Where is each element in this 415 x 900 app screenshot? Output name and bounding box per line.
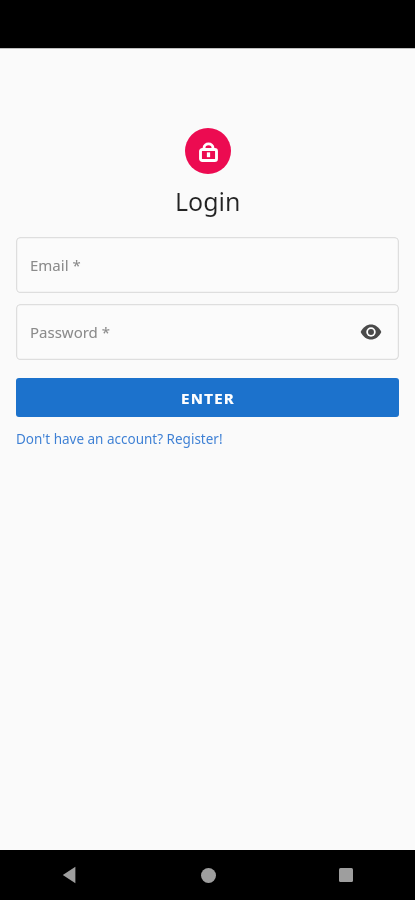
button[interactable]: Password *	[16, 304, 399, 360]
button[interactable]: ENTER	[16, 378, 399, 417]
staticText: Login	[175, 184, 241, 218]
button[interactable]: Show password	[357, 318, 385, 346]
staticText: Don't have an account? Register!	[16, 430, 223, 448]
staticText: ENTER	[181, 388, 235, 408]
staticText: Email *	[30, 255, 385, 275]
button[interactable]: Back	[0, 850, 139, 900]
button[interactable]: Home	[139, 850, 277, 900]
button[interactable]: Email *	[16, 237, 399, 293]
button[interactable]: Recent apps	[277, 850, 415, 900]
button[interactable]: Don't have an account? Register!	[16, 430, 399, 448]
staticText: Password *	[30, 322, 357, 342]
